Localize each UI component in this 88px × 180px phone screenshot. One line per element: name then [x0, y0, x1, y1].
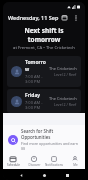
- staticText: at Fremont, CA • The Cricketech: [13, 45, 75, 51]
- staticText: The Cricketech: [49, 96, 77, 101]
- staticText: The Cricketech: [49, 66, 77, 71]
- staticText: Friday: [25, 92, 41, 99]
- button[interactable]: Discover: [24, 154, 44, 169]
- button[interactable]: Search for Shift Opportunities: [3, 125, 85, 154]
- staticText: Schedule: [7, 163, 20, 167]
- staticText: Level 2 / Reef: [54, 72, 77, 77]
- button[interactable]: Recent apps: [63, 171, 71, 179]
- button[interactable]: Friday: [7, 89, 81, 113]
- staticText: Tomorrow: [25, 59, 49, 73]
- staticText: Level 2 / Reef: [54, 102, 77, 107]
- staticText: 7:00 AM - 3:00 PM: [25, 74, 49, 84]
- button[interactable]: Home: [40, 171, 48, 179]
- staticText: Notifications: [45, 163, 63, 167]
- button[interactable]: Tomorrow: [7, 56, 81, 87]
- button[interactable]: Me: [65, 154, 85, 169]
- staticText: Search for Shift Opportunities: [21, 128, 80, 140]
- staticText: Discover: [28, 163, 41, 167]
- staticText: Me: [73, 163, 78, 167]
- button[interactable]: More options: [71, 13, 80, 22]
- staticText: Wednesday, 11 Sep: [8, 14, 59, 21]
- button[interactable]: Back: [17, 171, 25, 179]
- button[interactable]: Calendar view: [60, 13, 69, 22]
- staticText: 7:00 AM - 3:00 PM: [25, 100, 49, 110]
- staticText: Find more opportunities and earn $$: [21, 141, 80, 151]
- button[interactable]: Notifications: [44, 154, 64, 169]
- staticText: Next shift is tomorrow: [9, 26, 79, 44]
- button[interactable]: Schedule: [3, 154, 23, 169]
